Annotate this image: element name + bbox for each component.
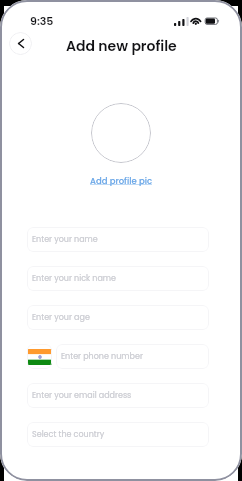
- button[interactable]: Enter your nick name: [27, 266, 209, 291]
- staticText: Enter your nick name: [32, 273, 117, 284]
- staticText: Enter phone number: [61, 351, 143, 362]
- button[interactable]: Select the country: [27, 422, 209, 447]
- staticText: Enter your email address: [32, 390, 132, 401]
- button[interactable]: Add profile pic: [90, 175, 152, 187]
- staticText: Add new profile: [66, 36, 177, 56]
- staticText: Enter your age: [32, 312, 90, 323]
- button[interactable]: Enter your age: [27, 305, 209, 330]
- staticText: Enter your name: [32, 234, 98, 245]
- button[interactable]: Back: [9, 32, 32, 55]
- staticText: 9:35: [30, 13, 54, 28]
- button[interactable]: Enter your email address: [27, 383, 209, 408]
- staticText: Select the country: [32, 429, 105, 440]
- button[interactable]: Country code India: [27, 344, 52, 369]
- button[interactable]: Enter your name: [27, 227, 209, 252]
- button[interactable]: Enter phone number: [56, 344, 209, 369]
- button[interactable]: Profile picture: [91, 103, 151, 163]
